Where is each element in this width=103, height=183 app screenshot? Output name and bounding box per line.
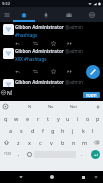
button[interactable]: Federated timeline [80,7,103,22]
staticText: d [31,127,35,134]
button[interactable]: f [38,124,48,136]
staticText: Gibbon Administrator [15,48,64,54]
button[interactable]: a [5,124,16,136]
button[interactable]: d [27,124,38,136]
button[interactable]: Shift [0,136,13,148]
staticText: s [20,127,23,134]
button[interactable]: Favourite [51,69,56,74]
button[interactable]: Compose toot [86,65,100,79]
button[interactable]: v [46,136,57,148]
staticText: XXX #hashtags [15,56,47,62]
button[interactable]: u [63,112,73,124]
staticText: Gibbon Administrator [15,24,64,30]
staticText: . [81,151,83,157]
button[interactable]: More [67,41,72,46]
staticText: Not [70,104,77,109]
button[interactable]: h [58,124,68,136]
button[interactable]: Notifications [35,7,57,22]
staticText: u [66,115,70,122]
button[interactable]: Gibbon Administrator [0,22,103,46]
button[interactable]: t [43,112,53,124]
staticText: 9:32 [2,1,10,6]
staticText: e [26,115,30,122]
staticText: n [72,139,76,146]
button[interactable]: i [73,112,83,124]
staticText: z [17,139,20,146]
button[interactable]: Reply [15,41,20,46]
button[interactable]: n [68,136,79,148]
button[interactable]: Backspace [90,136,103,148]
staticText: t [47,115,49,122]
staticText: i [77,115,79,122]
staticText: b [61,139,65,146]
button[interactable]: g [48,124,58,136]
button[interactable]: p [93,112,103,124]
button[interactable]: Local timeline [57,7,80,22]
button[interactable]: c [35,136,46,148]
button[interactable]: Favourite [51,41,56,46]
staticText: y [57,115,60,122]
staticText: #hashtags [15,32,38,38]
button[interactable]: Boost [33,69,38,74]
staticText: o [86,115,90,122]
button[interactable]: Home [13,7,35,22]
button[interactable]: Enter [91,150,100,159]
button[interactable]: e [22,112,33,124]
button[interactable]: Boost [33,41,38,46]
button[interactable]: Gibbon Administrator [0,77,103,87]
button[interactable]: r [33,112,43,124]
button[interactable]: . [76,148,87,160]
button[interactable]: w [11,112,22,124]
button[interactable]: j [68,124,78,136]
staticText: No [48,104,54,109]
staticText: p [96,115,100,122]
button[interactable]: Reply [15,69,20,74]
staticText: Gibbon Administrator [15,79,64,85]
staticText: j [72,127,74,134]
staticText: ?123 [4,152,11,156]
button[interactable]: Emoji [24,148,34,160]
button[interactable]: More [67,69,72,74]
staticText: m [82,139,88,146]
staticText: N [28,104,32,109]
button[interactable]: k [78,124,88,136]
staticText: x [28,139,31,146]
button[interactable]: l [88,124,98,136]
staticText: TOOT! [86,93,97,98]
button[interactable]: o [83,112,93,124]
staticText: c [39,139,42,146]
button[interactable]: m [79,136,90,148]
staticText: , [18,151,20,157]
staticText: l [92,127,94,134]
button[interactable]: Home [47,171,57,183]
staticText: w [14,115,19,122]
staticText: N [7,90,11,97]
button[interactable]: Open navigation menu [0,7,13,22]
staticText: v [50,139,53,146]
button[interactable]: , [14,148,24,160]
button[interactable]: b [57,136,68,148]
staticText: f [42,127,44,134]
staticText: @admin [64,24,83,30]
button[interactable]: z [13,136,24,148]
button[interactable]: Switch keyboard [91,171,100,183]
staticText: a [9,127,13,134]
staticText: h [61,127,65,134]
staticText: k [82,127,85,134]
staticText: q [4,115,8,122]
staticText: @admin [64,79,83,85]
button[interactable]: y [53,112,63,124]
staticText: @admin [64,48,83,54]
button[interactable]: Recent apps [78,171,88,183]
staticText: g [51,127,55,134]
button[interactable]: s [16,124,27,136]
button[interactable]: Back [16,171,26,183]
button[interactable]: Symbols [0,148,14,160]
button[interactable]: Gibbon Administrator [0,46,103,77]
button[interactable]: TOOT! [83,92,100,98]
staticText: r [37,115,40,122]
button[interactable]: q [0,112,11,124]
button[interactable]: x [24,136,35,148]
